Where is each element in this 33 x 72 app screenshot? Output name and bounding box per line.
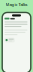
staticText: Magic Talks	[5, 2, 27, 7]
